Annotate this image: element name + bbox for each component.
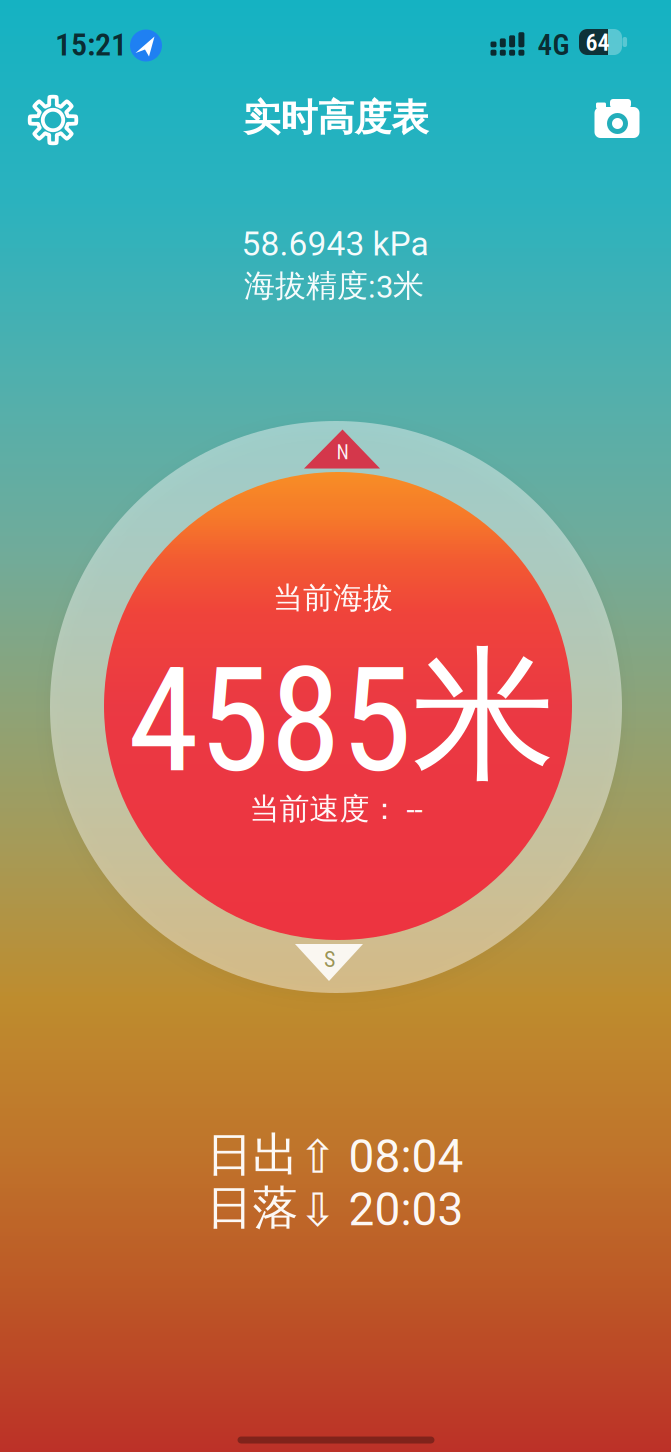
button[interactable]: Settings bbox=[25, 92, 81, 148]
staticText: 64 bbox=[585, 28, 609, 56]
button[interactable]: Camera bbox=[587, 95, 647, 147]
staticText: S bbox=[324, 947, 335, 972]
staticText: 58.6943 kPa bbox=[241, 224, 428, 264]
staticText: 4585米 bbox=[128, 625, 556, 807]
staticText: 实时高度表 bbox=[243, 95, 428, 141]
staticText: 海拔精度:3米 bbox=[244, 266, 424, 306]
staticText: 当前速度： -- bbox=[249, 790, 422, 828]
staticText: 4G bbox=[537, 28, 569, 62]
staticText: 日出⇧ 08:04 bbox=[206, 1126, 463, 1184]
staticText: N bbox=[336, 441, 348, 464]
staticText: 当前海拔 bbox=[273, 579, 393, 617]
staticText: 15:21 bbox=[55, 26, 127, 63]
staticText: 日落⇩ 20:03 bbox=[206, 1179, 463, 1237]
